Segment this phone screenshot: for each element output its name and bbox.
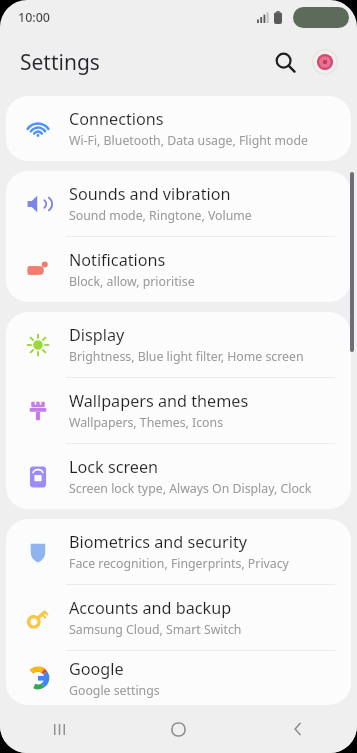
button[interactable]: Recent apps xyxy=(0,705,119,753)
staticText: Brightness, Blue light filter, Home scre… xyxy=(69,348,304,365)
staticText: Face recognition, Fingerprints, Privacy xyxy=(69,555,289,572)
staticText: Wi-Fi, Bluetooth, Data usage, Flight mod… xyxy=(69,132,308,149)
button[interactable]: Account profile xyxy=(305,42,345,82)
button[interactable]: Notifications xyxy=(6,237,351,302)
button[interactable]: Display xyxy=(6,312,351,377)
staticText: Connections xyxy=(69,108,164,130)
button[interactable]: Wallpapers and themes xyxy=(6,378,351,443)
staticText: Accounts and backup xyxy=(69,597,232,619)
button[interactable]: Back xyxy=(238,705,357,753)
button[interactable]: Connections xyxy=(6,96,351,161)
staticText: Samsung Cloud, Smart Switch xyxy=(69,621,242,638)
staticText: 10:00 xyxy=(18,9,51,26)
staticText: Display xyxy=(69,324,125,346)
button[interactable]: Accounts and backup xyxy=(6,585,351,650)
staticText: Google settings xyxy=(69,682,160,699)
button[interactable]: Google xyxy=(6,651,351,705)
button[interactable]: Lock screen xyxy=(6,444,351,509)
staticText: Lock screen xyxy=(69,456,159,478)
staticText: Notifications xyxy=(69,249,166,271)
staticText: Settings xyxy=(20,48,100,77)
staticText: Sounds and vibration xyxy=(69,183,231,205)
staticText: Block, allow, prioritise xyxy=(69,273,195,290)
button[interactable]: Home xyxy=(119,705,238,753)
staticText: Wallpapers and themes xyxy=(69,390,249,412)
button[interactable]: Sounds and vibration xyxy=(6,171,351,236)
staticText: Sound mode, Ringtone, Volume xyxy=(69,207,252,224)
staticText: Google xyxy=(69,658,124,680)
staticText: Biometrics and security xyxy=(69,531,248,553)
staticText: Wallpapers, Themes, Icons xyxy=(69,414,224,431)
button[interactable]: Search xyxy=(265,42,305,82)
button[interactable]: Biometrics and security xyxy=(6,519,351,584)
staticText: Screen lock type, Always On Display, Clo… xyxy=(69,480,335,497)
